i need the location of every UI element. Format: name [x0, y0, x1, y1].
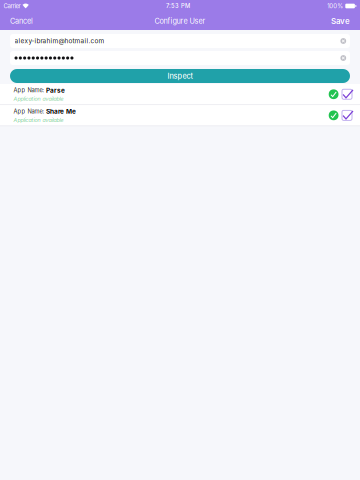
button[interactable]: Select Parse: [342, 89, 352, 99]
button[interactable]: Save: [325, 12, 356, 29]
staticText: App Name:: [13, 108, 44, 115]
button[interactable]: Available: [329, 89, 338, 99]
staticText: 7:53 PM: [166, 2, 190, 9]
staticText: alexy-ibrahim@hotmail.com: [14, 37, 104, 45]
button[interactable]: Available: [329, 110, 338, 120]
staticText: Save: [331, 16, 350, 26]
button[interactable]: Clear text: [339, 36, 348, 45]
button[interactable]: Select Share Me: [342, 110, 352, 120]
staticText: Application available: [13, 96, 63, 102]
staticText: Parse: [46, 86, 65, 94]
button[interactable]: Clear text: [339, 53, 348, 62]
staticText: App Name:: [13, 87, 44, 94]
staticText: Carrier: [3, 2, 20, 10]
staticText: Application available: [13, 117, 63, 123]
button[interactable]: Cancel: [4, 12, 39, 29]
staticText: Configure User: [154, 17, 205, 25]
button[interactable]: Inspect: [10, 69, 350, 83]
staticText: Cancel: [10, 17, 33, 25]
staticText: 100%: [327, 2, 343, 10]
staticText: Inspect: [167, 72, 192, 80]
staticText: Share Me: [46, 107, 76, 115]
